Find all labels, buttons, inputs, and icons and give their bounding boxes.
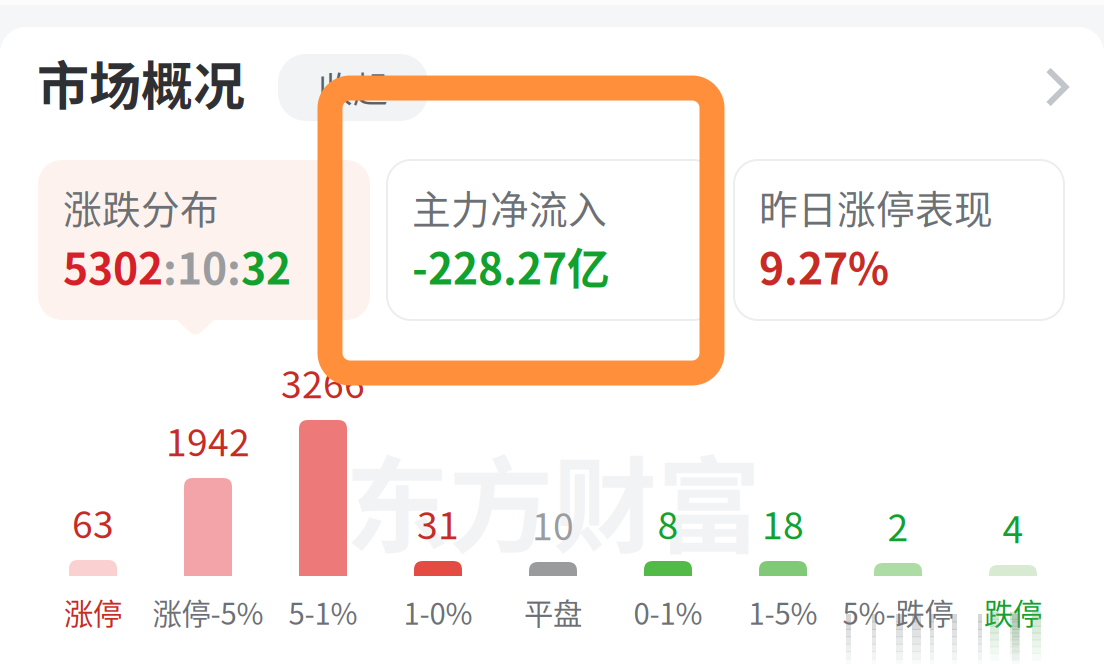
staticText: 63 bbox=[72, 495, 114, 549]
staticText: 10 bbox=[532, 497, 574, 551]
staticText: 1-5% bbox=[748, 591, 817, 633]
staticText: 1-0% bbox=[403, 591, 472, 633]
staticText: 9.27% bbox=[759, 235, 889, 297]
staticText: 涨跌分布 bbox=[63, 179, 219, 235]
staticText: 收起 bbox=[318, 62, 388, 113]
staticText: 4 bbox=[1002, 500, 1023, 554]
staticText: 市场概况 bbox=[37, 45, 245, 120]
staticText: 东方财富 bbox=[345, 424, 761, 575]
staticText: 3266 bbox=[281, 355, 365, 409]
staticText: 5302 bbox=[63, 235, 163, 297]
staticText: 主力净流入 bbox=[412, 179, 607, 235]
staticText: 5%-跌停 bbox=[842, 591, 953, 633]
button[interactable]: 涨跌分布 bbox=[38, 160, 370, 320]
staticText: 1942 bbox=[166, 413, 250, 467]
staticText: 5-1% bbox=[288, 591, 357, 633]
button[interactable]: More bbox=[1034, 61, 1080, 113]
staticText: 昨日涨停表现 bbox=[759, 179, 993, 235]
staticText: 2 bbox=[887, 498, 908, 552]
staticText: 0-1% bbox=[633, 591, 702, 633]
staticText: 31 bbox=[417, 496, 459, 550]
staticText: 18 bbox=[762, 496, 804, 550]
staticText: 平盘 bbox=[524, 591, 582, 633]
staticText: :10: bbox=[163, 235, 241, 297]
button[interactable]: 收起 bbox=[278, 54, 428, 121]
staticText: 32 bbox=[241, 235, 291, 297]
staticText: 8 bbox=[657, 496, 678, 550]
staticText: 涨停 bbox=[64, 591, 122, 633]
staticText: -228.27亿 bbox=[412, 235, 610, 297]
button[interactable]: 昨日涨停表现 bbox=[734, 160, 1064, 320]
button[interactable]: 主力净流入 bbox=[387, 160, 717, 320]
staticText: 涨停-5% bbox=[152, 591, 263, 633]
staticText: 跌停 bbox=[984, 591, 1042, 633]
